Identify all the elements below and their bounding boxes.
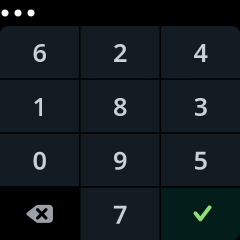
staticText: 3 [193,89,207,123]
button[interactable]: 9 [80,134,159,186]
button[interactable]: 0 [0,134,79,186]
staticText: 2 [113,35,127,69]
staticText: 5 [193,143,207,177]
button[interactable]: 5 [161,134,240,186]
staticText: 0 [32,143,46,177]
button[interactable]: Delete [0,188,79,240]
button[interactable]: 1 [0,80,79,132]
staticText: 9 [113,143,127,177]
staticText: 7 [113,197,127,231]
staticText: 6 [32,35,46,69]
button[interactable]: 3 [161,80,240,132]
button[interactable]: Confirm [161,188,240,240]
staticText: 1 [32,89,46,123]
button[interactable]: 2 [80,26,159,78]
button[interactable]: 7 [80,188,159,240]
button[interactable]: 8 [80,80,159,132]
staticText: 4 [193,35,207,69]
button[interactable]: 4 [161,26,240,78]
button[interactable]: 6 [0,26,79,78]
staticText: 8 [113,89,127,123]
